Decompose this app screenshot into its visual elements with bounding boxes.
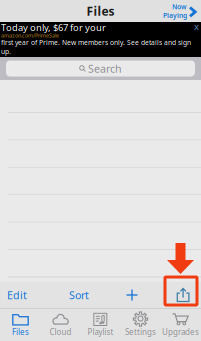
staticText: Search bbox=[88, 61, 122, 76]
staticText: Upgrades bbox=[162, 327, 199, 337]
button[interactable]: Upgrades bbox=[160, 308, 200, 341]
button[interactable]: Playlist bbox=[80, 308, 120, 341]
button[interactable]: Search bbox=[6, 60, 195, 76]
button[interactable]: Close ad bbox=[192, 22, 201, 31]
button[interactable]: Share bbox=[166, 282, 200, 308]
staticText: first year of Prime. New members only. S… bbox=[1, 38, 191, 47]
staticText: Edit bbox=[7, 288, 27, 302]
button[interactable]: Add bbox=[115, 282, 149, 308]
staticText: Files bbox=[86, 3, 114, 19]
button[interactable]: Now bbox=[163, 0, 201, 22]
button[interactable]: Files bbox=[0, 308, 40, 341]
staticText: Sort bbox=[69, 288, 89, 302]
button[interactable]: Sort bbox=[62, 282, 96, 308]
staticText: up. bbox=[1, 47, 11, 56]
staticText: Now bbox=[172, 2, 187, 11]
button[interactable]: Settings bbox=[120, 308, 160, 341]
button[interactable]: Edit bbox=[0, 282, 34, 308]
staticText: amazon.com/PrimeSale bbox=[1, 32, 59, 39]
staticText: Cloud bbox=[49, 327, 71, 337]
staticText: Settings bbox=[125, 327, 156, 337]
staticText: Today only, $67 for your bbox=[1, 21, 106, 34]
staticText: x bbox=[194, 20, 199, 33]
staticText: Playlist bbox=[87, 327, 113, 337]
staticText: Playing bbox=[163, 11, 187, 20]
staticText: Files bbox=[12, 327, 29, 337]
button[interactable]: Cloud bbox=[40, 308, 80, 341]
